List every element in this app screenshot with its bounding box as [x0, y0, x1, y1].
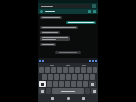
button[interactable] — [55, 51, 81, 54]
button[interactable] — [75, 67, 80, 73]
button[interactable] — [39, 88, 45, 94]
button[interactable] — [53, 81, 58, 87]
button[interactable] — [42, 74, 47, 80]
button[interactable] — [77, 81, 82, 87]
button[interactable]: Back — [51, 97, 54, 100]
button[interactable] — [47, 81, 52, 87]
button[interactable] — [91, 88, 97, 94]
button[interactable]: Recents — [82, 97, 85, 100]
button[interactable] — [60, 74, 65, 80]
button[interactable] — [51, 67, 56, 73]
button[interactable] — [87, 67, 92, 73]
button[interactable] — [48, 74, 53, 80]
button[interactable] — [39, 67, 44, 73]
button[interactable] — [72, 74, 77, 80]
button[interactable] — [40, 36, 70, 41]
button[interactable]: More options — [93, 10, 96, 13]
button[interactable] — [52, 88, 84, 94]
button[interactable] — [63, 67, 68, 73]
button[interactable] — [90, 74, 95, 80]
button[interactable] — [71, 81, 76, 87]
button[interactable] — [40, 31, 60, 34]
button[interactable] — [45, 67, 50, 73]
button[interactable] — [69, 67, 74, 73]
button[interactable] — [59, 81, 64, 87]
button[interactable] — [66, 74, 71, 80]
button[interactable] — [54, 74, 59, 80]
button[interactable]: Home — [67, 97, 70, 100]
button[interactable] — [57, 67, 62, 73]
button[interactable] — [78, 74, 83, 80]
button[interactable]: Back — [40, 10, 43, 13]
button[interactable] — [40, 4, 90, 8]
button[interactable]: Search — [88, 10, 91, 13]
button[interactable] — [93, 67, 97, 73]
button[interactable] — [81, 67, 86, 73]
button[interactable] — [40, 26, 78, 29]
button[interactable] — [65, 81, 70, 87]
button[interactable] — [66, 21, 96, 24]
button[interactable] — [83, 81, 88, 87]
button[interactable] — [39, 81, 46, 87]
button[interactable] — [89, 81, 96, 87]
button[interactable] — [84, 74, 89, 80]
button[interactable] — [40, 16, 62, 19]
button[interactable] — [40, 43, 56, 46]
